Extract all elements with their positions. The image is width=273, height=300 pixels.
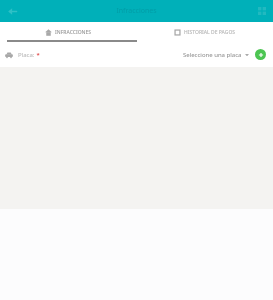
button[interactable]: Seleccione una placa [181, 48, 251, 62]
button[interactable]: HISTORIAL DE PAGOS [136, 22, 273, 42]
staticText: Placa: [18, 51, 35, 59]
button[interactable]: INFRACCIONES [0, 22, 136, 42]
button[interactable]: Add plate [255, 49, 266, 60]
staticText: Seleccione una placa [183, 51, 242, 59]
staticText: HISTORIAL DE PAGOS [184, 29, 236, 36]
staticText: * [35, 51, 40, 59]
staticText: Infracciones [0, 6, 273, 16]
button[interactable]: Back [3, 2, 21, 20]
staticText: INFRACCIONES [55, 29, 91, 36]
button[interactable]: Menu [253, 2, 271, 20]
